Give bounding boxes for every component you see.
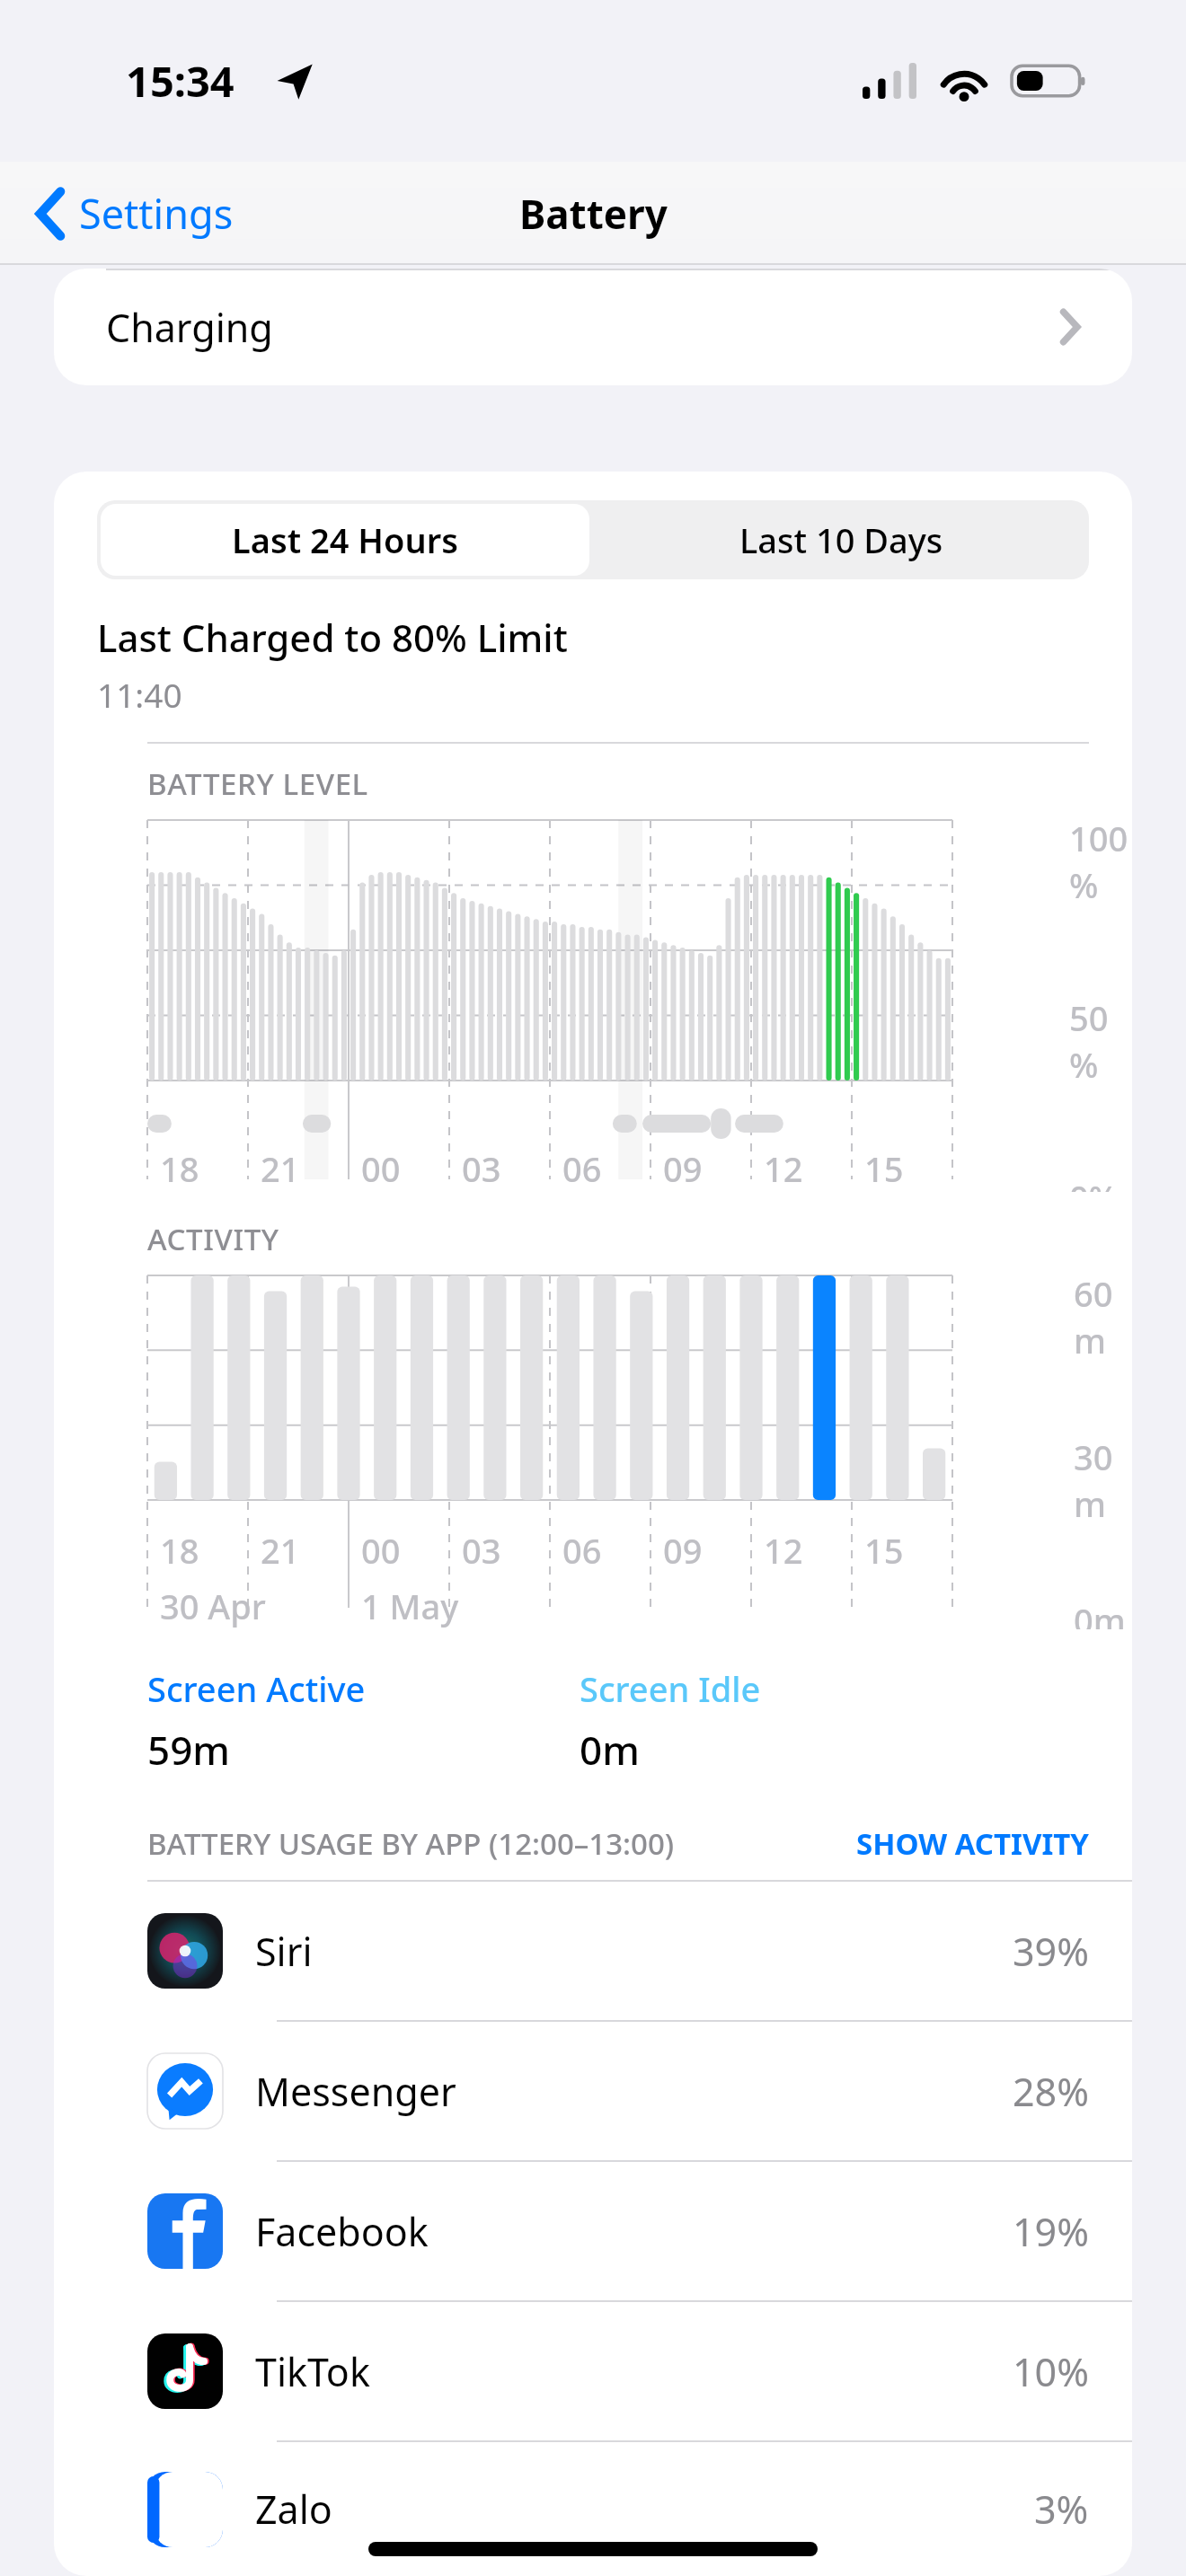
staticText: ACTIVITY: [147, 1219, 279, 1259]
staticText: 11:40: [97, 672, 182, 717]
staticText: Messenger: [255, 2065, 456, 2118]
button[interactable]: Last 10 Days: [593, 500, 1089, 579]
staticText: 03: [462, 1145, 501, 1192]
button[interactable]: TikTok: [54, 2302, 1132, 2440]
staticText: 03: [462, 1527, 501, 1574]
staticText: 0m: [580, 1723, 640, 1777]
button[interactable]: Zalo: [54, 2442, 1132, 2576]
staticText: 39%: [1013, 1925, 1089, 1978]
staticText: Last 24 Hours: [232, 516, 459, 563]
staticText: Last Charged to 80% Limit: [97, 612, 568, 663]
staticText: 09: [663, 1145, 703, 1192]
staticText: TikTok: [255, 2345, 370, 2398]
staticText: 28%: [1013, 2065, 1089, 2118]
button[interactable]: SHOW ACTIVITY: [856, 1823, 1089, 1864]
staticText: Siri: [255, 1925, 313, 1978]
staticText: Screen Active: [147, 1665, 366, 1712]
staticText: 18: [160, 1527, 199, 1574]
staticText: 0m: [1074, 1597, 1126, 1629]
staticText: 3%: [1034, 2483, 1089, 2536]
staticText: 15: [864, 1527, 904, 1574]
staticText: 60m: [1074, 1270, 1132, 1363]
staticText: BATTERY LEVEL: [147, 763, 368, 804]
staticText: Facebook: [255, 2205, 429, 2258]
staticText: Zalo: [255, 2483, 332, 2536]
staticText: 12: [764, 1527, 803, 1574]
staticText: 15:34: [126, 52, 235, 110]
staticText: 30 Apr: [160, 1583, 266, 1629]
staticText: 00: [361, 1145, 401, 1192]
button[interactable]: Charging: [54, 269, 1132, 385]
staticText: 50%: [1069, 994, 1132, 1088]
staticText: 30m: [1074, 1434, 1132, 1527]
staticText: 18: [160, 1145, 199, 1192]
staticText: 00: [361, 1527, 401, 1574]
button[interactable]: Settings: [31, 177, 239, 250]
staticText: 0%: [1069, 1174, 1119, 1192]
staticText: 09: [663, 1527, 703, 1574]
staticText: 1 May: [361, 1583, 459, 1629]
staticText: 10%: [1013, 2345, 1089, 2398]
staticText: 59m: [147, 1723, 231, 1777]
staticText: SHOW ACTIVITY: [856, 1823, 1089, 1864]
button[interactable]: Messenger: [54, 2022, 1132, 2160]
staticText: Charging: [106, 301, 273, 354]
staticText: 06: [562, 1527, 602, 1574]
button[interactable]: Facebook: [54, 2162, 1132, 2300]
staticText: Last 10 Days: [739, 516, 943, 563]
button[interactable]: Siri: [54, 1882, 1132, 2020]
staticText: 100%: [1069, 815, 1132, 908]
staticText: Screen Idle: [580, 1665, 761, 1712]
staticText: BATTERY USAGE BY APP (12:00–13:00): [147, 1823, 675, 1864]
staticText: 21: [261, 1145, 300, 1192]
staticText: Battery: [519, 187, 668, 241]
staticText: Settings: [79, 186, 234, 241]
button[interactable]: Last 24 Hours: [101, 504, 589, 576]
staticText: 06: [562, 1145, 602, 1192]
staticText: 12: [764, 1145, 803, 1192]
staticText: 21: [261, 1527, 300, 1574]
staticText: 19%: [1013, 2205, 1089, 2258]
staticText: 15: [864, 1145, 904, 1192]
